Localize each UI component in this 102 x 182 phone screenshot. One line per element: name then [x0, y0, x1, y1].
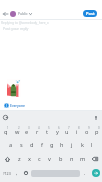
button[interactable]: Emoji	[21, 166, 30, 180]
button[interactable]: b	[55, 152, 66, 166]
button[interactable]: 5	[42, 124, 52, 138]
staticText: 2	[18, 126, 20, 130]
button[interactable]: ?123	[0, 166, 13, 180]
button[interactable]: k	[77, 138, 87, 152]
staticText: w	[15, 128, 20, 136]
staticText: z	[18, 155, 21, 163]
button[interactable]: 4	[32, 124, 42, 138]
button[interactable]: .	[81, 166, 89, 180]
staticText: e	[25, 128, 29, 136]
button[interactable]: Enter	[89, 166, 102, 180]
button[interactable]: m	[77, 152, 88, 166]
button[interactable]: 2	[11, 124, 22, 138]
staticText: .	[84, 170, 86, 177]
button[interactable]: a	[5, 138, 16, 152]
button[interactable]: s	[16, 138, 27, 152]
staticText: o	[85, 128, 89, 136]
button[interactable]: Backspace	[88, 152, 102, 166]
staticText: 7	[68, 126, 70, 130]
button[interactable]: Google search	[2, 114, 9, 121]
staticText: r	[36, 128, 39, 136]
staticText: b	[59, 155, 63, 163]
staticText: 0	[98, 126, 100, 130]
button[interactable]: j	[67, 138, 77, 152]
button[interactable]: 1	[0, 124, 11, 138]
staticText: ,	[16, 170, 18, 177]
staticText: Public	[18, 11, 28, 16]
button[interactable]: Voice input	[92, 114, 99, 121]
staticText: Post your reply	[3, 26, 29, 31]
button[interactable]: g	[47, 138, 57, 152]
staticText: j	[71, 141, 73, 149]
staticText: ?123	[3, 171, 11, 176]
staticText: Post	[86, 11, 95, 16]
staticText: y	[56, 128, 59, 136]
staticText: n	[70, 155, 74, 163]
button[interactable]: 6	[52, 124, 62, 138]
staticText: 5	[48, 126, 50, 130]
button[interactable]: x	[24, 152, 34, 166]
staticText: a	[9, 141, 13, 149]
button[interactable]: n	[66, 152, 77, 166]
button[interactable]: d	[27, 138, 37, 152]
staticText: v	[48, 155, 51, 163]
button[interactable]: 7	[62, 124, 72, 138]
staticText: x	[28, 155, 31, 163]
staticText: 9	[88, 126, 90, 130]
staticText: Everyone	[10, 103, 25, 108]
staticText: f	[41, 141, 43, 149]
button[interactable]: f	[37, 138, 47, 152]
staticText: q	[4, 128, 8, 136]
staticText: u	[65, 128, 69, 136]
staticText: m	[80, 155, 86, 163]
button[interactable]: Back	[1, 10, 9, 18]
staticText: Replying to @somebody_here_x	[1, 21, 49, 25]
button[interactable]: 0	[92, 124, 102, 138]
staticText: c	[38, 155, 41, 163]
button[interactable]: 8	[72, 124, 82, 138]
staticText: h	[60, 141, 64, 149]
button[interactable]: Post	[83, 10, 97, 17]
button[interactable]: l	[87, 138, 97, 152]
staticText: 6	[58, 126, 60, 130]
button[interactable]: Everyone	[0, 100, 102, 110]
button[interactable]: Public	[18, 11, 32, 16]
staticText: 3	[28, 126, 30, 130]
staticText: g	[50, 141, 54, 149]
staticText: 1	[7, 126, 9, 130]
staticText: k	[81, 141, 84, 149]
button[interactable]: z	[14, 152, 24, 166]
staticText: 4	[38, 126, 40, 130]
button[interactable]: Attached sticker	[7, 79, 21, 97]
button[interactable]: v	[44, 152, 55, 166]
button[interactable]: h	[57, 138, 67, 152]
button[interactable]: 3	[22, 124, 32, 138]
staticText: d	[30, 141, 34, 149]
staticText: p	[95, 128, 99, 136]
button[interactable]: ,	[13, 166, 21, 180]
staticText: l	[91, 141, 93, 149]
staticText: t	[46, 128, 49, 136]
staticText: 8	[78, 126, 80, 130]
button[interactable]: Shift	[0, 152, 14, 166]
button[interactable]: c	[34, 152, 44, 166]
staticText: i	[76, 128, 78, 136]
staticText: s	[20, 141, 23, 149]
button[interactable]: 9	[82, 124, 92, 138]
